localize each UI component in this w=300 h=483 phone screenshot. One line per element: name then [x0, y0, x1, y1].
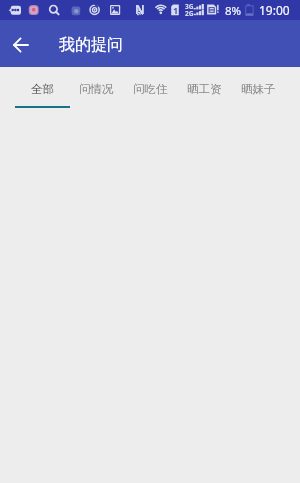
- staticText: 晒妹子: [241, 82, 276, 96]
- staticText: 8%: [225, 3, 242, 19]
- staticText: 问情况: [79, 82, 114, 96]
- staticText: 19:00: [259, 2, 290, 18]
- staticText: 2G: [185, 9, 194, 18]
- staticText: 1: [173, 4, 179, 16]
- staticText: 问吃住: [133, 82, 168, 96]
- staticText: 全部: [31, 82, 54, 96]
- button[interactable]: 晒妹子: [231, 67, 285, 109]
- staticText: 3G: [185, 2, 194, 11]
- staticText: 我的提问: [59, 35, 123, 55]
- button[interactable]: 晒工资: [177, 67, 231, 109]
- staticText: 晒工资: [187, 82, 222, 96]
- button[interactable]: Back: [0, 20, 42, 67]
- button[interactable]: 问吃住: [123, 67, 177, 109]
- button[interactable]: 问情况: [69, 67, 123, 109]
- staticText: N: [135, 1, 145, 17]
- button[interactable]: 全部: [15, 67, 69, 109]
